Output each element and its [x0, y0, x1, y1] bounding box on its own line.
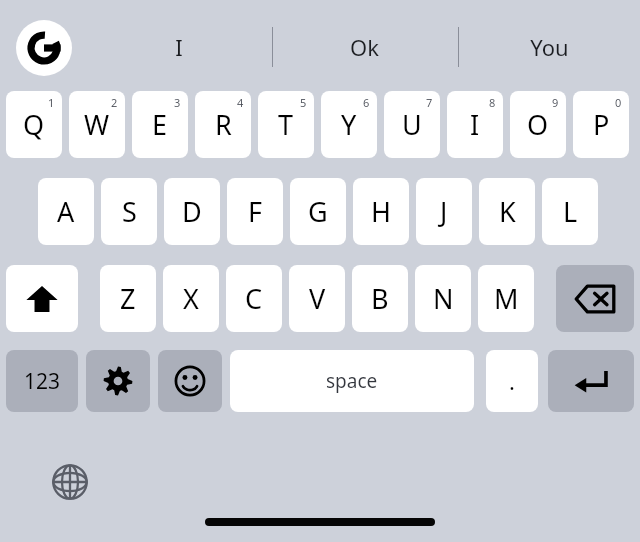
- staticText: B: [371, 280, 389, 317]
- staticText: 123: [24, 367, 61, 396]
- button[interactable]: O: [510, 91, 566, 158]
- staticText: U: [402, 106, 422, 143]
- button[interactable]: Q: [6, 91, 62, 158]
- staticText: E: [152, 106, 168, 143]
- staticText: N: [433, 280, 454, 317]
- staticText: F: [248, 193, 263, 230]
- staticText: H: [371, 193, 392, 230]
- staticText: R: [215, 106, 232, 143]
- button[interactable]: .: [486, 350, 538, 412]
- button[interactable]: G: [290, 178, 346, 245]
- staticText: 9: [552, 95, 559, 110]
- staticText: 7: [426, 95, 433, 110]
- staticText: O: [527, 106, 549, 143]
- button[interactable]: L: [542, 178, 598, 245]
- button[interactable]: Z: [100, 265, 156, 332]
- staticText: J: [440, 193, 448, 230]
- staticText: M: [494, 280, 519, 317]
- staticText: 3: [174, 95, 181, 110]
- button[interactable]: Shift: [6, 265, 78, 332]
- button[interactable]: M: [478, 265, 534, 332]
- staticText: I: [470, 106, 480, 143]
- button[interactable]: K: [479, 178, 535, 245]
- staticText: 2: [111, 95, 118, 110]
- staticText: 6: [363, 95, 370, 110]
- staticText: K: [499, 193, 516, 230]
- staticText: C: [245, 280, 263, 317]
- staticText: Z: [120, 280, 136, 317]
- button[interactable]: You: [489, 25, 609, 69]
- staticText: G: [308, 193, 328, 230]
- button[interactable]: R: [195, 91, 251, 158]
- staticText: L: [563, 193, 578, 230]
- staticText: I: [175, 32, 183, 62]
- staticText: 0: [615, 95, 622, 110]
- button[interactable]: E: [132, 91, 188, 158]
- button[interactable]: S: [101, 178, 157, 245]
- button[interactable]: Backspace: [556, 265, 634, 332]
- staticText: A: [57, 193, 75, 230]
- staticText: 1: [48, 95, 55, 110]
- button[interactable]: I: [447, 91, 503, 158]
- button[interactable]: P: [573, 91, 629, 158]
- staticText: You: [530, 32, 569, 62]
- staticText: W: [84, 106, 110, 143]
- staticText: X: [183, 280, 199, 317]
- button[interactable]: D: [164, 178, 220, 245]
- staticText: Ok: [350, 32, 379, 62]
- button[interactable]: Google: [16, 20, 72, 76]
- button[interactable]: U: [384, 91, 440, 158]
- staticText: 8: [489, 95, 496, 110]
- staticText: V: [309, 280, 326, 317]
- button[interactable]: I: [119, 25, 239, 69]
- staticText: Q: [23, 106, 45, 143]
- button[interactable]: Y: [321, 91, 377, 158]
- button[interactable]: 123: [6, 350, 78, 412]
- button[interactable]: J: [416, 178, 472, 245]
- button[interactable]: Enter: [548, 350, 634, 412]
- button[interactable]: W: [69, 91, 125, 158]
- button[interactable]: Emoji: [158, 350, 222, 412]
- staticText: T: [278, 106, 294, 143]
- button[interactable]: F: [227, 178, 283, 245]
- staticText: 5: [300, 95, 307, 110]
- button[interactable]: Change language: [46, 458, 94, 506]
- button[interactable]: A: [38, 178, 94, 245]
- button[interactable]: H: [353, 178, 409, 245]
- button[interactable]: N: [415, 265, 471, 332]
- button[interactable]: Ok: [304, 25, 424, 69]
- button[interactable]: B: [352, 265, 408, 332]
- button[interactable]: X: [163, 265, 219, 332]
- button[interactable]: space: [230, 350, 474, 412]
- button[interactable]: C: [226, 265, 282, 332]
- staticText: Y: [341, 106, 357, 143]
- button[interactable]: Settings: [86, 350, 150, 412]
- staticText: D: [182, 193, 202, 230]
- button[interactable]: T: [258, 91, 314, 158]
- button[interactable]: V: [289, 265, 345, 332]
- staticText: 4: [237, 95, 244, 110]
- staticText: P: [593, 106, 610, 143]
- staticText: space: [326, 368, 378, 394]
- staticText: .: [509, 366, 515, 396]
- staticText: S: [122, 193, 137, 230]
